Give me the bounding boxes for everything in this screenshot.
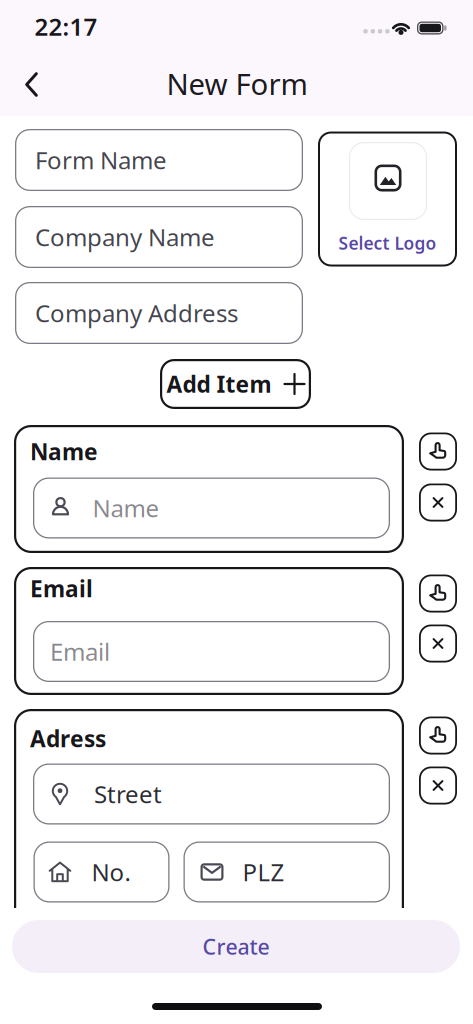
staticText: Name: [92, 492, 159, 524]
staticText: Company Address: [35, 297, 238, 329]
button[interactable]: Street: [33, 763, 390, 824]
button[interactable]: Remove: [419, 766, 457, 804]
staticText: Email: [50, 636, 110, 667]
staticText: Name: [30, 436, 98, 466]
button[interactable]: Back: [21, 70, 41, 98]
staticText: Adress: [30, 723, 106, 753]
staticText: PLZ: [242, 856, 284, 888]
staticText: Form Name: [35, 144, 167, 176]
staticText: Select Logo: [338, 231, 436, 254]
button[interactable]: Create: [12, 920, 460, 973]
button[interactable]: Remove: [419, 483, 457, 521]
staticText: Company Name: [35, 221, 215, 253]
button[interactable]: Email: [33, 621, 390, 682]
button[interactable]: Form Name: [15, 129, 303, 191]
button[interactable]: Add Item: [160, 359, 311, 409]
button[interactable]: Reorder: [419, 574, 457, 612]
staticText: Create: [202, 932, 269, 961]
staticText: Email: [30, 573, 93, 603]
staticText: Add Item: [166, 369, 271, 399]
button[interactable]: Reorder: [419, 716, 457, 754]
button[interactable]: Remove: [419, 624, 457, 662]
button[interactable]: Select Logo: [318, 131, 457, 266]
button[interactable]: Company Name: [15, 206, 303, 268]
button[interactable]: Name: [33, 477, 390, 538]
button[interactable]: Company Address: [15, 282, 303, 344]
staticText: No.: [91, 856, 130, 888]
button[interactable]: PLZ: [183, 841, 390, 902]
staticText: New Form: [166, 64, 307, 103]
staticText: Street: [94, 778, 162, 810]
staticText: 22:17: [34, 11, 97, 42]
button[interactable]: Reorder: [419, 432, 457, 470]
button[interactable]: No.: [33, 841, 169, 902]
